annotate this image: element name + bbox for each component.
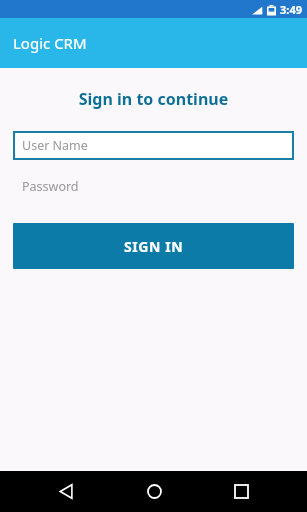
button[interactable]: SIGN IN [13, 223, 294, 269]
button[interactable]: User Name [13, 131, 294, 160]
staticText: Logic CRM [13, 33, 87, 53]
staticText: SIGN IN [124, 237, 184, 256]
staticText: Sign in to continue [0, 88, 307, 110]
staticText: User Name [22, 137, 88, 154]
button[interactable]: Password [13, 174, 294, 198]
button[interactable]: Back [44, 471, 88, 512]
button[interactable]: Recent apps [219, 471, 263, 512]
staticText: Password [22, 178, 79, 195]
staticText: 3:49 [280, 2, 302, 17]
button[interactable]: Home [132, 471, 176, 512]
